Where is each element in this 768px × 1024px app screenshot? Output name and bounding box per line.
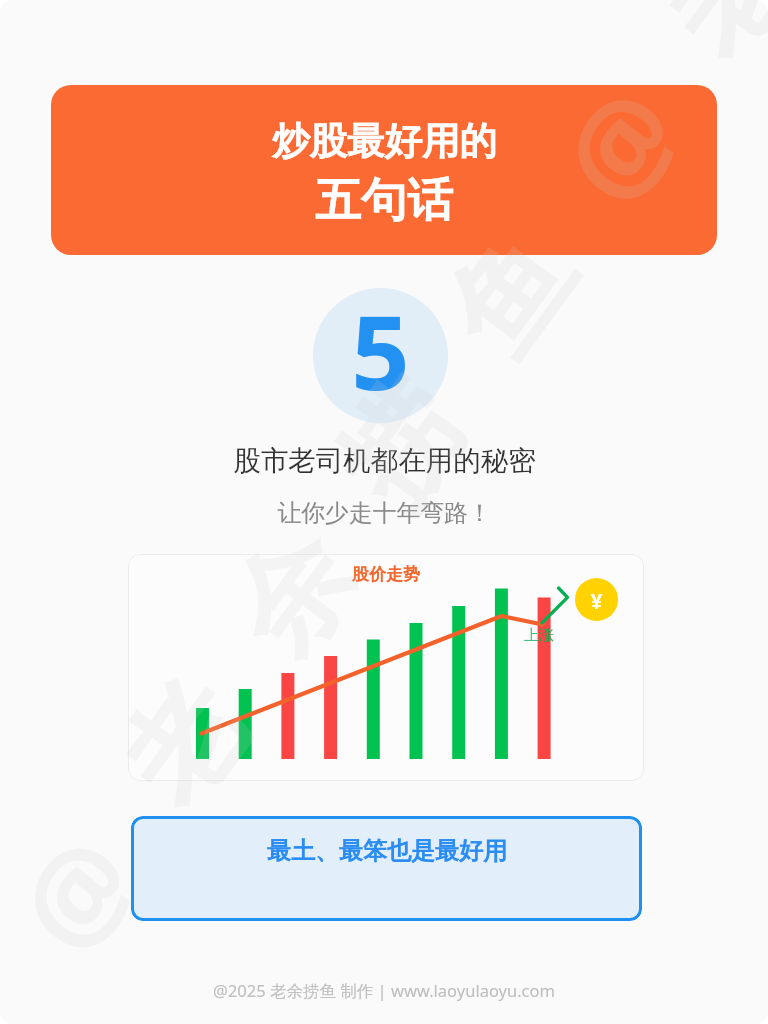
staticText: 最土、最笨也是最好用: [267, 836, 507, 866]
button[interactable]: 炒股最好用的: [51, 85, 717, 255]
staticText: 让你少走十年弯路！: [277, 498, 492, 528]
button[interactable]: 最土、最笨也是最好用: [131, 816, 642, 921]
staticText: ¥: [590, 587, 603, 616]
staticText: 股价走势: [352, 564, 420, 585]
staticText: @2025 老余捞鱼 制作 | www.laoyulaoyu.com: [213, 979, 555, 1002]
staticText: 上涨: [524, 626, 554, 645]
staticText: 股市老司机都在用的秘密: [233, 444, 536, 479]
button[interactable]: Yuan price badge: [575, 578, 618, 621]
staticText: 5: [351, 281, 410, 420]
staticText: 五句话: [315, 172, 453, 230]
staticText: 炒股最好用的: [272, 118, 497, 165]
